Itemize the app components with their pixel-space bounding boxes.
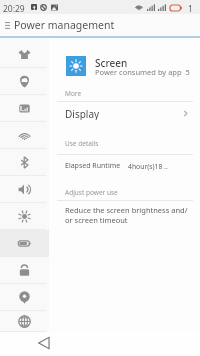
staticText: 20:29 [3, 3, 25, 15]
staticText: Use details [65, 139, 99, 148]
staticText: 1 [188, 3, 193, 15]
button[interactable]: Network [0, 311, 49, 332]
staticText: Screen [95, 56, 128, 70]
button[interactable]: Screen [49, 53, 200, 77]
button[interactable]: Location [0, 284, 49, 311]
button[interactable]: Data usage [0, 95, 49, 122]
staticText: Adjust power use [65, 188, 118, 197]
staticText: Display [65, 107, 100, 120]
button[interactable]: Battery [0, 230, 49, 257]
button[interactable]: Themes [0, 41, 49, 68]
button[interactable]: Back [35, 334, 52, 351]
staticText: Reduce the screen brightness and/ or scr… [65, 205, 188, 225]
staticText: 4hour(s)18 .. [128, 162, 168, 171]
button[interactable]: Cloud [0, 68, 49, 95]
button[interactable]: Menu [0, 14, 14, 36]
button[interactable]: Display [49, 107, 200, 120]
button[interactable]: Security [0, 257, 49, 284]
staticText: Elapsed Runtime [65, 161, 121, 171]
button[interactable]: Volume [0, 176, 49, 203]
staticText: Power consumed by app 5 [95, 67, 190, 77]
button[interactable]: Brightness [0, 203, 49, 230]
button[interactable]: Wi-Fi [0, 122, 49, 149]
staticText: More [65, 89, 82, 98]
staticText: Power management [14, 18, 115, 32]
button[interactable]: Bluetooth [0, 149, 49, 176]
